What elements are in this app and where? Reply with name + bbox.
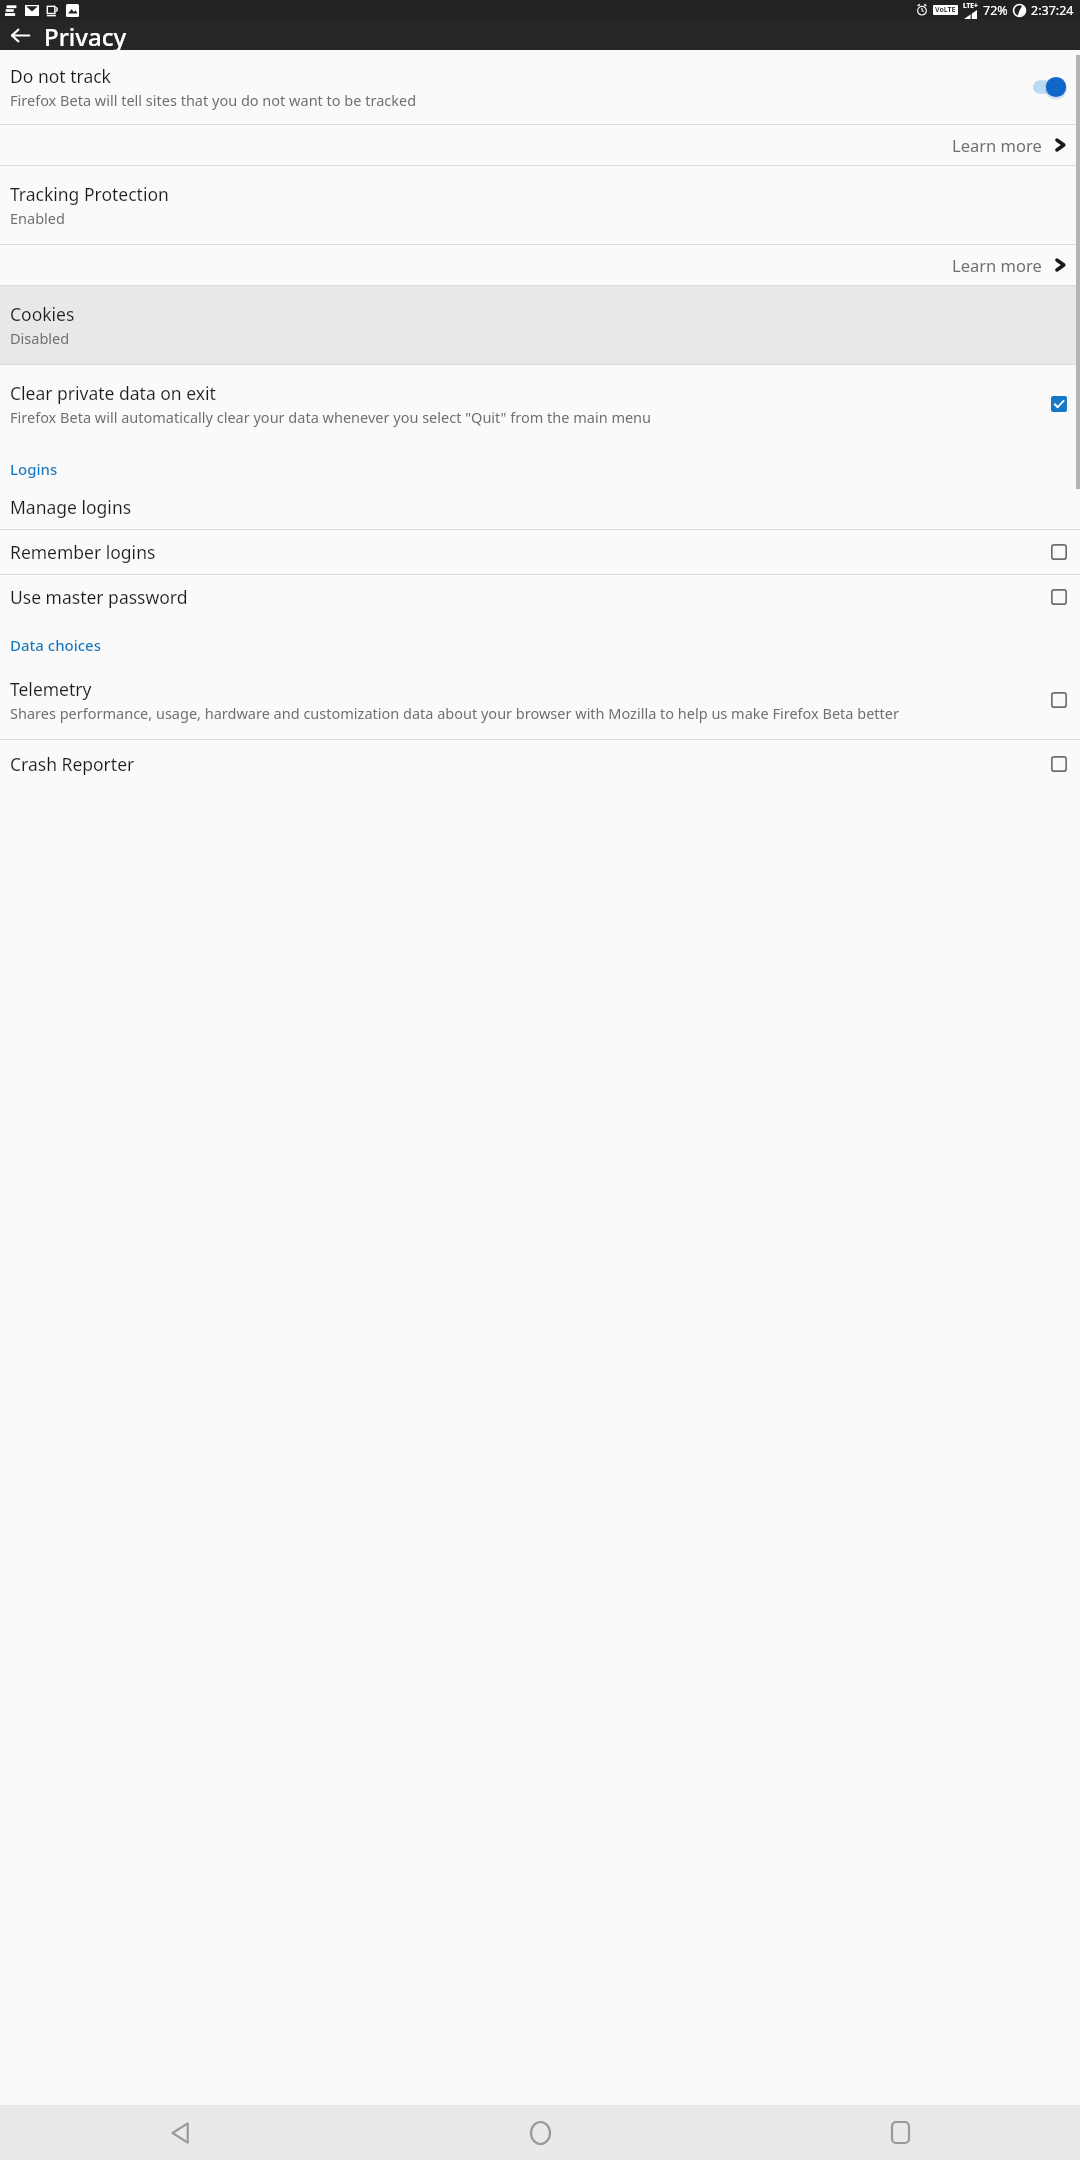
staticText: Learn more bbox=[952, 254, 1042, 276]
staticText: Clear private data on exit bbox=[10, 381, 216, 405]
button[interactable]: Cookies bbox=[0, 286, 1080, 364]
staticText: LTE+ bbox=[963, 1, 978, 10]
button[interactable]: Learn more bbox=[0, 245, 1080, 285]
button[interactable]: Telemetry bbox=[0, 661, 1080, 739]
staticText: Enabled bbox=[10, 208, 65, 228]
button[interactable]: Use master password bbox=[0, 575, 1080, 619]
button[interactable]: Tracking Protection bbox=[0, 166, 1080, 244]
staticText: Firefox Beta will tell sites that you do… bbox=[10, 90, 417, 110]
staticText: Firefox Beta will automatically clear yo… bbox=[10, 407, 652, 427]
staticText: Cookies bbox=[10, 302, 75, 326]
staticText: Remember logins bbox=[10, 540, 156, 564]
button[interactable]: Manage logins bbox=[0, 485, 1080, 529]
button[interactable]: Clear private data on exit bbox=[0, 365, 1080, 443]
staticText: Data choices bbox=[10, 635, 102, 655]
staticText: Manage logins bbox=[10, 495, 132, 519]
button[interactable]: Do not track bbox=[0, 50, 1080, 124]
staticText: Privacy bbox=[44, 20, 127, 50]
staticText: 2:37:24 bbox=[1031, 2, 1074, 19]
button[interactable]: Recent apps bbox=[720, 2105, 1080, 2160]
button[interactable]: Navigate up bbox=[0, 20, 40, 50]
staticText: Do not track bbox=[10, 64, 111, 88]
staticText: Crash Reporter bbox=[10, 752, 135, 776]
staticText: Disabled bbox=[10, 328, 70, 348]
staticText: Shares performance, usage, hardware and … bbox=[10, 703, 899, 723]
staticText: Learn more bbox=[952, 134, 1042, 156]
staticText: Tracking Protection bbox=[10, 182, 169, 206]
staticText: Telemetry bbox=[10, 677, 92, 701]
staticText: Logins bbox=[10, 459, 58, 479]
button[interactable]: Crash Reporter bbox=[0, 740, 1080, 788]
staticText: 72% bbox=[983, 2, 1008, 19]
staticText: VoLTE bbox=[935, 5, 956, 15]
staticText: Use master password bbox=[10, 585, 188, 609]
button[interactable]: Learn more bbox=[0, 125, 1080, 165]
button[interactable]: Remember logins bbox=[0, 530, 1080, 574]
button[interactable]: Home bbox=[360, 2105, 720, 2160]
button[interactable]: Back bbox=[0, 2105, 360, 2160]
